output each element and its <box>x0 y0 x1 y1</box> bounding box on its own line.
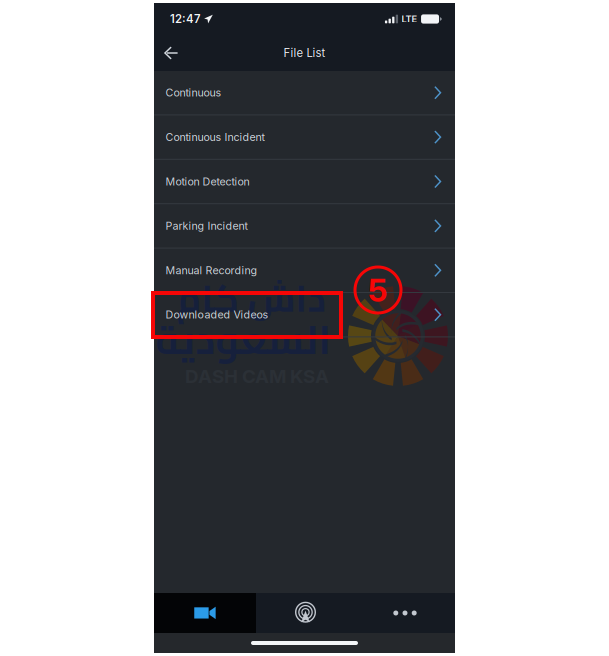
button[interactable]: Continuous <box>154 71 455 114</box>
staticText: 12:47 <box>170 12 201 26</box>
button[interactable]: Downloaded Videos <box>154 293 455 336</box>
staticText: LTE <box>401 13 417 25</box>
button[interactable]: Parking Incident <box>154 204 455 248</box>
staticText: Motion Detection <box>165 175 249 188</box>
staticText: Continuous Incident <box>165 131 264 143</box>
staticText: Parking Incident <box>165 219 247 232</box>
button[interactable]: Motion Detection <box>154 160 455 203</box>
button[interactable]: Back <box>154 35 188 71</box>
button[interactable]: More <box>355 593 455 633</box>
button[interactable]: Recordings <box>154 593 256 633</box>
staticText: داش كام <box>176 263 326 333</box>
button[interactable]: Live view <box>256 593 355 633</box>
staticText: DASH CAM KSA <box>185 365 329 388</box>
staticText: Manual Recording <box>165 264 257 277</box>
staticText: File List <box>283 46 325 60</box>
button[interactable]: Continuous Incident <box>154 115 455 159</box>
staticText: السعودية <box>155 302 331 377</box>
staticText: Downloaded Videos <box>165 308 268 321</box>
staticText: 5 <box>368 271 388 309</box>
button[interactable]: Manual Recording <box>154 249 455 292</box>
staticText: Continuous <box>165 86 221 99</box>
